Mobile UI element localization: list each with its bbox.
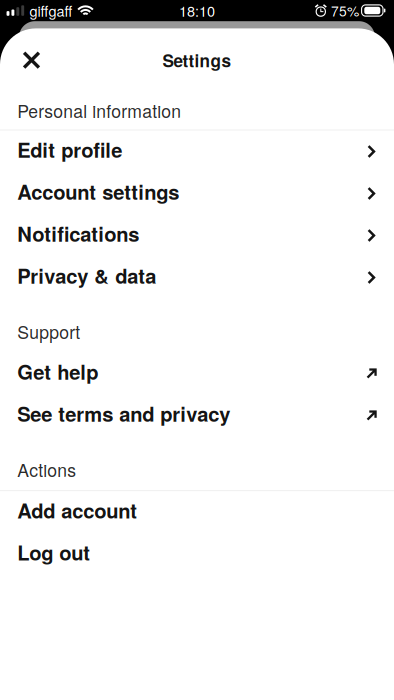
button[interactable]: Notifications	[0, 214, 394, 256]
staticText: Personal information	[17, 98, 181, 123]
staticText: Account settings	[17, 177, 179, 206]
button[interactable]: Log out	[0, 533, 394, 575]
button[interactable]: Add account	[0, 491, 394, 533]
button[interactable]: Account settings	[0, 172, 394, 214]
button[interactable]: See terms and privacy	[0, 394, 394, 436]
staticText: Log out	[17, 538, 90, 567]
staticText: 18:10	[179, 0, 215, 21]
staticText: See terms and privacy	[17, 399, 230, 428]
staticText: Add account	[17, 496, 137, 525]
staticText: Support	[17, 319, 80, 344]
staticText: giffgaff	[29, 0, 72, 21]
button[interactable]: Privacy & data	[0, 256, 394, 298]
staticText: Privacy & data	[17, 261, 156, 290]
staticText: Get help	[17, 357, 98, 386]
button[interactable]: Edit profile	[0, 130, 394, 172]
button[interactable]: Get help	[0, 352, 394, 394]
button[interactable]: Close	[9, 28, 53, 92]
staticText: Settings	[162, 48, 231, 72]
staticText: Edit profile	[17, 135, 122, 164]
staticText: Actions	[17, 457, 76, 482]
staticText: Notifications	[17, 219, 139, 248]
staticText: 75%	[331, 1, 359, 20]
